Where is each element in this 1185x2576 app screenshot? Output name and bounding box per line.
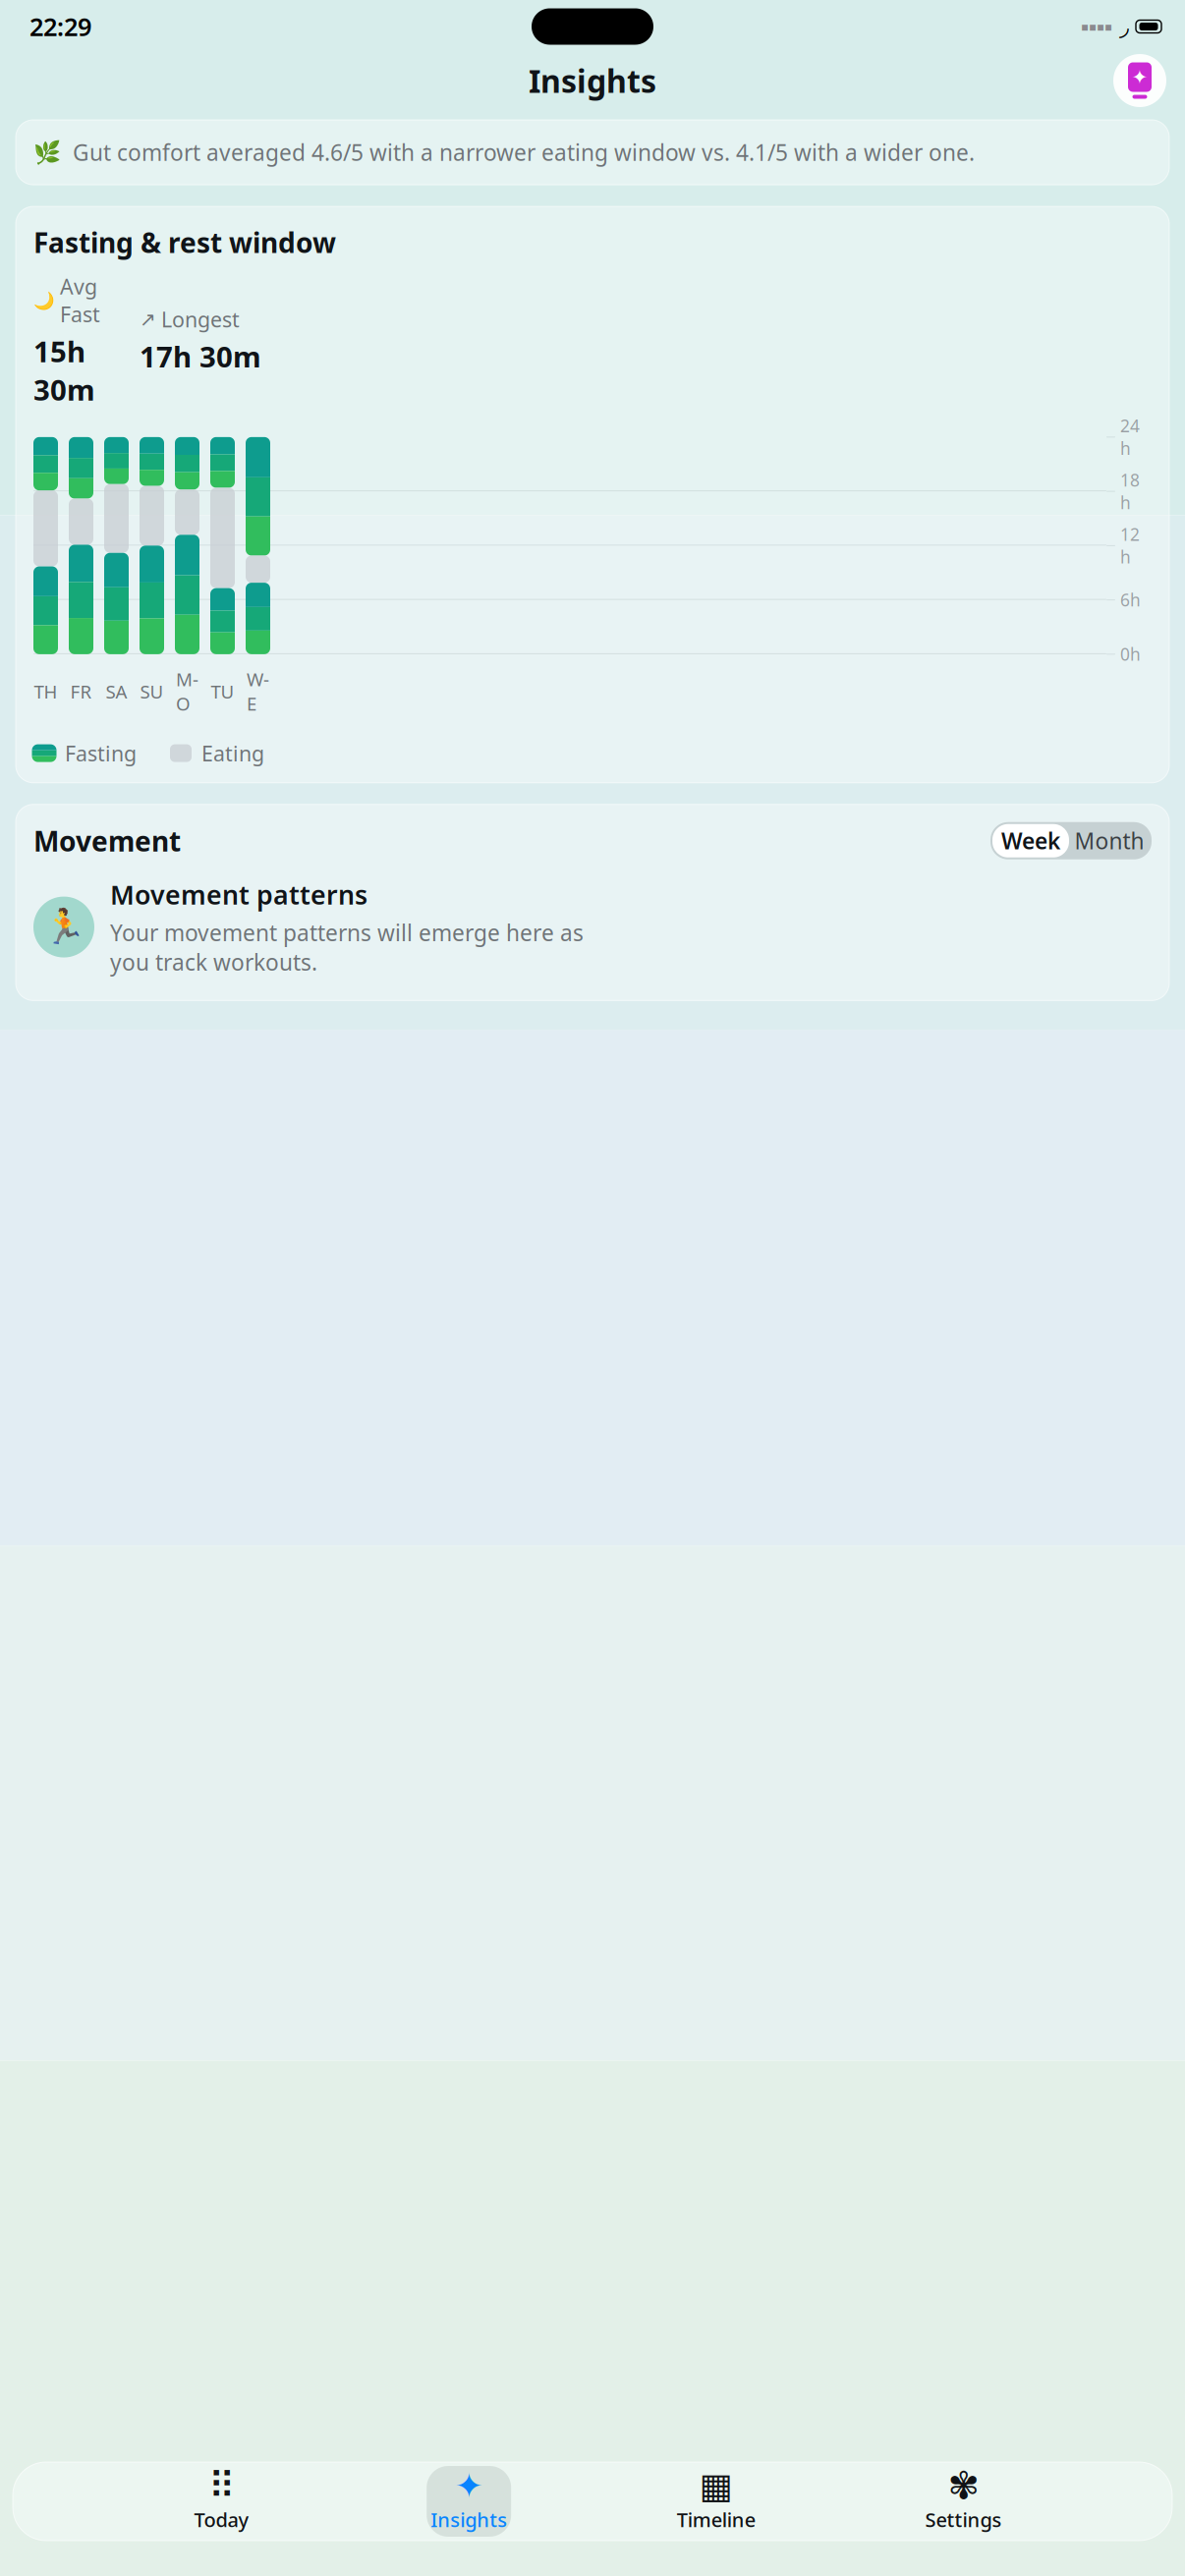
staticText: Fasting xyxy=(65,739,137,767)
staticText: Today xyxy=(194,2506,249,2533)
staticText: 12h xyxy=(1120,523,1140,568)
staticText: ▪▪▪▪ xyxy=(1081,20,1112,33)
button[interactable]: Month xyxy=(1069,824,1150,857)
staticText: Insights xyxy=(431,2506,507,2533)
staticText: Fasting & rest window xyxy=(33,224,336,261)
staticText: 🌿 xyxy=(33,140,61,165)
staticText: Longest xyxy=(161,305,240,333)
staticText: 6h xyxy=(1120,589,1141,611)
staticText: WE xyxy=(247,667,269,716)
staticText: ✾ xyxy=(948,2464,979,2507)
staticText: ✦ xyxy=(1131,66,1148,88)
staticText: FR xyxy=(70,679,92,703)
button[interactable]: Week xyxy=(992,824,1069,857)
staticText: TU xyxy=(211,679,234,703)
button[interactable]: ▦ xyxy=(674,2466,758,2537)
staticText: Timeline xyxy=(677,2506,755,2533)
staticText: Settings xyxy=(925,2506,1002,2533)
staticText: 🏃 xyxy=(43,908,85,946)
staticText: 15h 30m xyxy=(33,332,95,409)
staticText: TH xyxy=(34,679,57,703)
staticText: SA xyxy=(106,679,127,703)
staticText: Insights xyxy=(529,60,656,101)
button[interactable]: ✦ xyxy=(427,2466,511,2537)
staticText: 🌙 xyxy=(33,291,55,310)
staticText: Avg Fast xyxy=(60,272,100,328)
staticText: 18h xyxy=(1120,469,1140,514)
staticText: 22:29 xyxy=(29,10,91,43)
button[interactable]: AI insights xyxy=(1113,54,1166,107)
staticText: ⠿ xyxy=(208,2465,235,2507)
staticText: ▦ xyxy=(699,2466,733,2506)
staticText: Movement xyxy=(33,823,181,859)
staticText: Month xyxy=(1074,826,1144,856)
staticText: SU xyxy=(140,679,164,703)
staticText: Week xyxy=(1001,826,1060,856)
staticText: Your movement patterns will emerge here … xyxy=(110,918,584,977)
staticText: Eating xyxy=(201,739,264,767)
staticText: Movement patterns xyxy=(110,877,367,912)
staticText: 17h 30m xyxy=(140,337,261,376)
staticText: 24h xyxy=(1120,414,1140,460)
button[interactable]: ⠿ xyxy=(179,2466,264,2537)
staticText: Gut comfort averaged 4.6/5 with a narrow… xyxy=(73,138,975,167)
staticText: 0h xyxy=(1120,643,1141,665)
button[interactable]: ✾ xyxy=(921,2466,1006,2537)
staticText: ↗ xyxy=(140,308,156,330)
staticText: MO xyxy=(176,667,198,716)
staticText: ✦ xyxy=(455,2466,483,2505)
staticText: ◞ xyxy=(1119,12,1129,41)
